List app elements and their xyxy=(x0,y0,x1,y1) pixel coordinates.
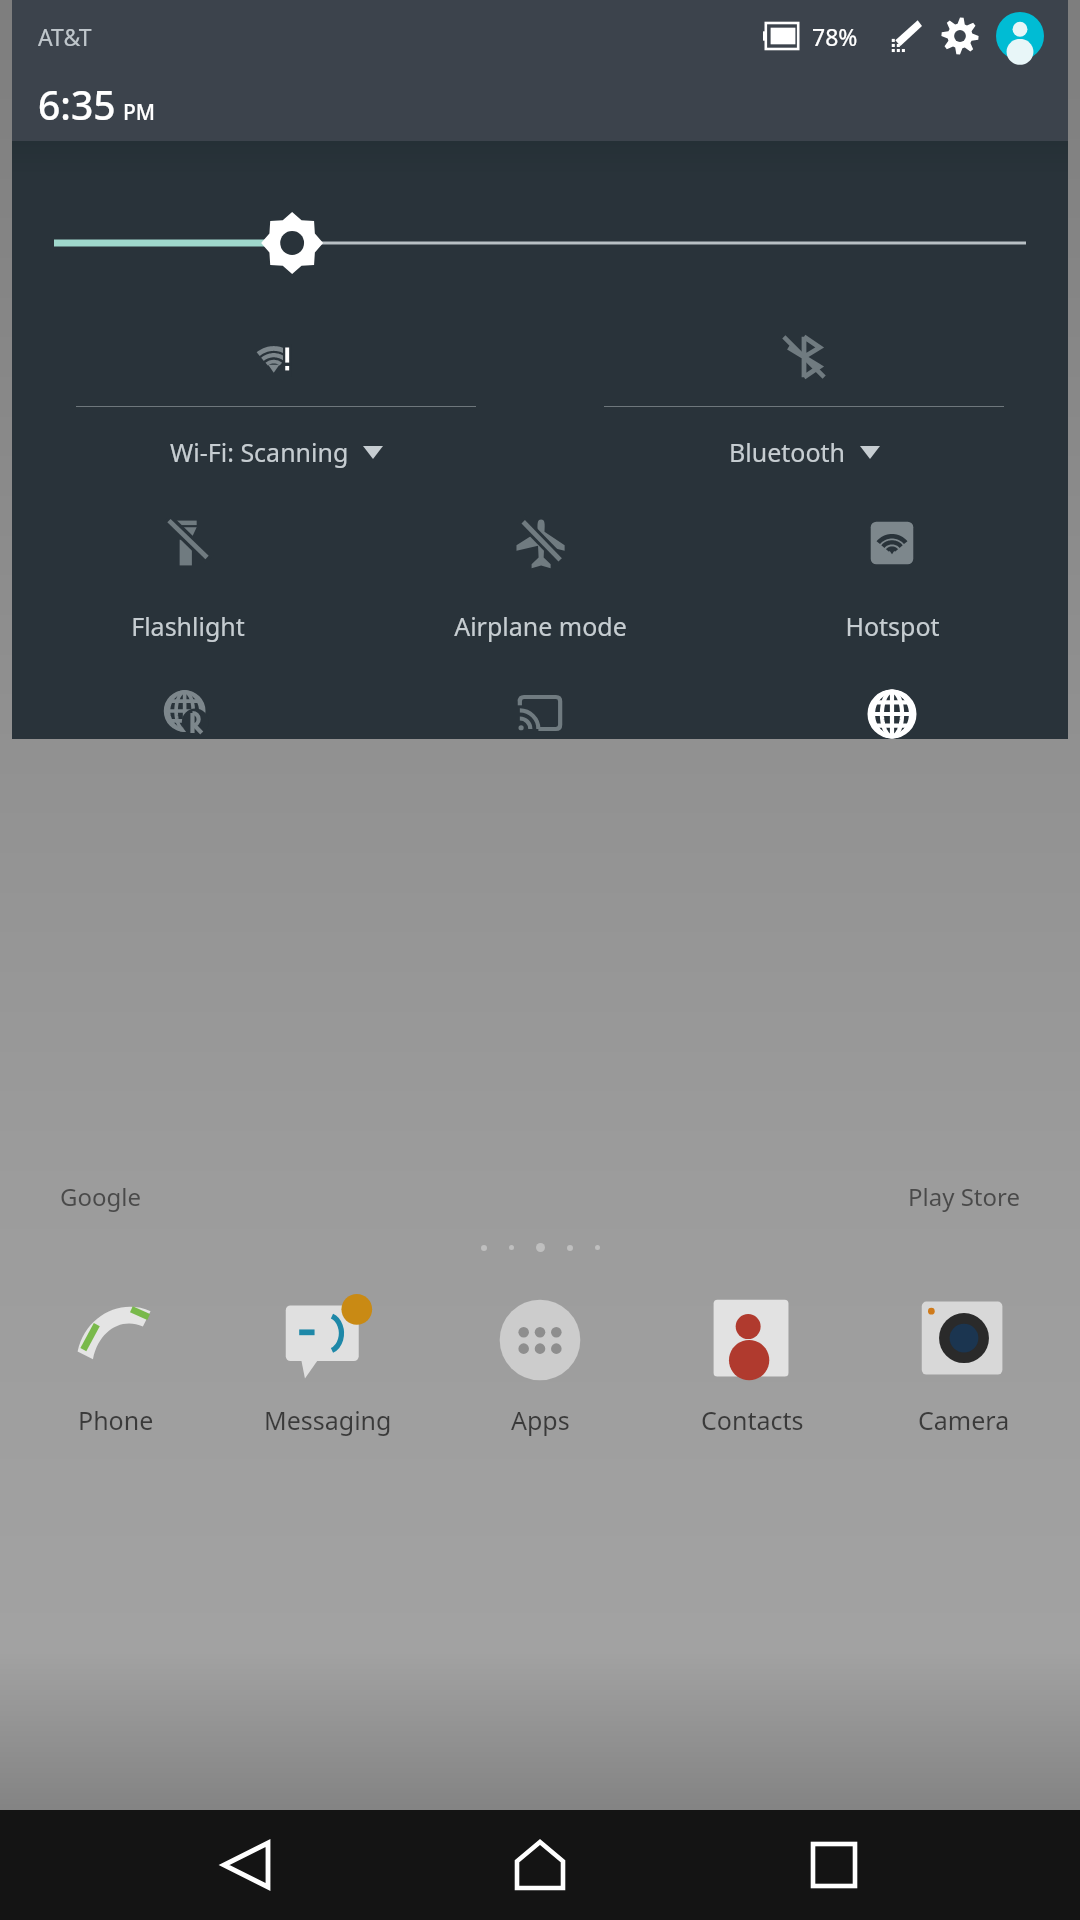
staticText: Flashlight xyxy=(131,609,245,643)
staticText: Airplane mode xyxy=(454,609,627,643)
button[interactable]: Wi-Fi: Scanning xyxy=(12,324,540,469)
staticText: Apps xyxy=(511,1403,570,1437)
button[interactable]: Hotspot xyxy=(716,511,1068,643)
button[interactable]: Contacts xyxy=(646,1285,858,1437)
staticText: Google xyxy=(60,1180,141,1213)
button[interactable]: Back xyxy=(198,1817,294,1913)
button[interactable]: Recent apps xyxy=(786,1817,882,1913)
staticText: Camera xyxy=(918,1403,1010,1437)
staticText: Messaging xyxy=(264,1403,392,1437)
staticText: Bluetooth xyxy=(729,435,846,469)
button[interactable]: Brightness xyxy=(12,218,1068,268)
staticText: AT&T xyxy=(38,21,92,52)
staticText: Phone xyxy=(78,1403,154,1437)
button[interactable]: Home xyxy=(492,1817,588,1913)
button[interactable]: Edit quick settings xyxy=(880,12,928,60)
button[interactable]: Flashlight xyxy=(12,511,364,643)
staticText: Hotspot xyxy=(845,609,940,643)
staticText: 6:35 xyxy=(38,78,116,131)
staticText: Play Store xyxy=(908,1180,1020,1213)
button[interactable]: Roaming xyxy=(12,689,364,739)
button[interactable]: Phone xyxy=(10,1285,222,1437)
button[interactable]: Cast screen xyxy=(364,689,716,739)
button[interactable]: Bluetooth xyxy=(540,324,1068,469)
button[interactable]: User profile xyxy=(994,10,1046,62)
button[interactable]: Settings xyxy=(936,12,984,60)
button[interactable]: Camera xyxy=(858,1285,1070,1437)
staticText: Wi-Fi: Scanning xyxy=(170,435,349,469)
button[interactable]: Mobile data xyxy=(716,689,1068,739)
staticText: 78% xyxy=(812,21,858,52)
button[interactable]: Messaging xyxy=(222,1285,434,1437)
staticText: Contacts xyxy=(701,1403,804,1437)
staticText: PM xyxy=(123,98,156,127)
button[interactable]: Airplane mode xyxy=(364,511,716,643)
button[interactable]: Apps xyxy=(434,1285,646,1437)
